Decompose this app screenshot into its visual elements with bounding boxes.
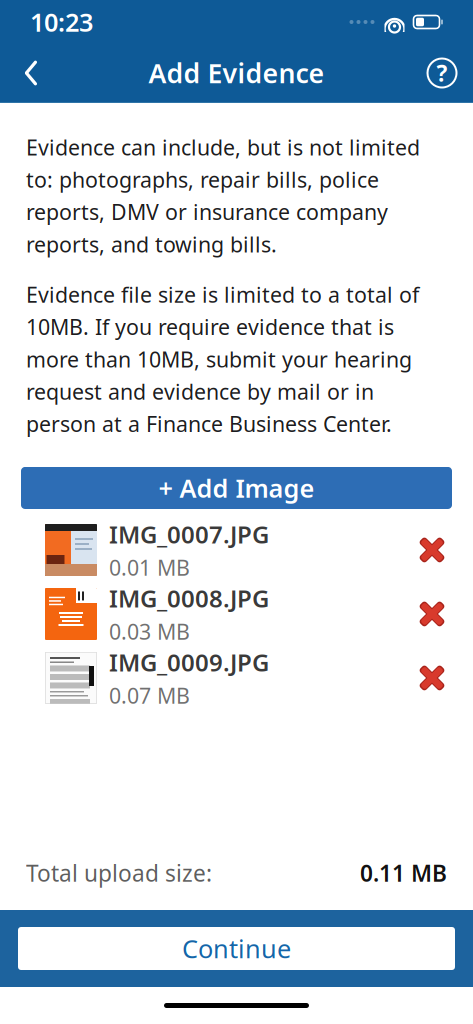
staticText: IMG_0008.JPG — [109, 582, 269, 614]
button[interactable]: IMG_0008.JPG — [0, 582, 473, 646]
staticText: IMG_0007.JPG — [109, 518, 269, 550]
button[interactable]: IMG_0007.JPG — [0, 518, 473, 582]
button[interactable]: + Add Image — [21, 467, 452, 509]
staticText: + Add Image — [158, 471, 314, 505]
staticText: IMG_0009.JPG — [109, 646, 269, 678]
staticText: Total upload size: — [26, 858, 212, 888]
staticText: Add Evidence — [148, 55, 324, 91]
staticText: Evidence can include, but is not limited… — [26, 133, 420, 258]
button[interactable]: IMG_0009.JPG — [0, 646, 473, 710]
staticText: Evidence file size is limited to a total… — [26, 280, 419, 438]
staticText: 10:23 — [30, 5, 93, 39]
staticText: ? — [436, 58, 447, 88]
staticText: 0.03 MB — [109, 617, 190, 645]
staticText: 0.01 MB — [109, 553, 190, 581]
button[interactable]: Back — [8, 50, 54, 96]
staticText: 0.07 MB — [109, 681, 190, 709]
staticText: 0.11 MB — [360, 858, 447, 888]
staticText: Continue — [182, 932, 291, 965]
button[interactable]: Help — [419, 50, 465, 96]
button[interactable]: Continue — [18, 927, 455, 970]
